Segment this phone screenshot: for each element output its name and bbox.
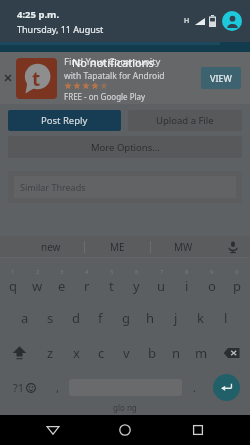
- button[interactable]: Close ad: [0, 52, 16, 104]
- button[interactable]: 2: [25, 262, 49, 300]
- staticText: p: [233, 277, 241, 295]
- button[interactable]: Recents: [178, 415, 218, 445]
- staticText: e: [58, 277, 66, 295]
- staticText: t: [109, 277, 114, 295]
- button[interactable]: k: [188, 300, 213, 335]
- button[interactable]: new: [18, 236, 84, 258]
- button[interactable]: h: [138, 300, 163, 335]
- button[interactable]: Back: [33, 415, 73, 445]
- button[interactable]: c: [89, 335, 114, 370]
- button[interactable]: b: [139, 335, 164, 370]
- staticText: j: [174, 309, 178, 327]
- staticText: f: [98, 309, 103, 327]
- staticText: k: [197, 309, 204, 327]
- staticText: ,: [56, 380, 59, 395]
- button[interactable]: Backspace: [214, 335, 249, 370]
- staticText: h: [146, 309, 155, 327]
- staticText: 1: [11, 268, 15, 276]
- staticText: g: [122, 309, 130, 327]
- staticText: Upload a File: [156, 114, 214, 127]
- staticText: VIEW: [210, 72, 232, 84]
- button[interactable]: Close ad: [0, 52, 250, 104]
- button[interactable]: Upload a File: [128, 110, 242, 131]
- button[interactable]: More Options...: [8, 136, 242, 158]
- button[interactable]: 6: [124, 262, 149, 300]
- staticText: with Tapatalk for Android: [64, 70, 165, 82]
- staticText: i: [185, 277, 189, 295]
- staticText: d: [72, 309, 80, 327]
- button[interactable]: j: [163, 300, 188, 335]
- staticText: glo ng: [113, 402, 137, 413]
- button[interactable]: z: [37, 335, 63, 370]
- staticText: 7: [160, 268, 164, 276]
- staticText: 8: [185, 268, 189, 276]
- staticText: H: [184, 16, 190, 26]
- button[interactable]: ?1: [4, 370, 45, 404]
- staticText: v: [123, 344, 130, 362]
- staticText: .: [193, 380, 196, 395]
- staticText: 4:25 p.m.: [17, 8, 60, 21]
- staticText: a: [21, 309, 29, 327]
- button[interactable]: 5: [99, 262, 124, 300]
- staticText: z: [47, 344, 54, 362]
- staticText: y: [133, 277, 140, 295]
- button[interactable]: v: [114, 335, 139, 370]
- button[interactable]: l: [213, 300, 238, 335]
- button[interactable]: a: [12, 300, 38, 335]
- staticText: o: [208, 277, 216, 295]
- button[interactable]: Post Reply: [8, 110, 121, 131]
- staticText: x: [73, 344, 80, 362]
- button[interactable]: s: [38, 300, 63, 335]
- button[interactable]: n: [164, 335, 189, 370]
- staticText: Post Reply: [41, 114, 88, 127]
- button[interactable]: 8: [174, 262, 199, 300]
- staticText: 2: [36, 268, 40, 276]
- staticText: r: [84, 277, 90, 295]
- staticText: c: [98, 344, 105, 362]
- button[interactable]: f: [88, 300, 113, 335]
- staticText: m: [195, 344, 208, 362]
- button[interactable]: Enter: [213, 374, 240, 401]
- button[interactable]: 7: [149, 262, 174, 300]
- staticText: 4: [85, 268, 89, 276]
- button[interactable]: Home: [105, 415, 145, 445]
- staticText: 3: [60, 268, 64, 276]
- button[interactable]: Shift: [1, 335, 37, 370]
- staticText: No notifications: [72, 55, 154, 70]
- staticText: 9: [210, 268, 214, 276]
- button[interactable]: 0: [224, 262, 249, 300]
- staticText: w: [32, 277, 43, 295]
- button[interactable]: Similar Threads: [8, 171, 242, 203]
- staticText: s: [47, 309, 54, 327]
- staticText: t: [32, 66, 41, 92]
- button[interactable]: 3: [49, 262, 74, 300]
- staticText: Similar Threads: [20, 181, 86, 193]
- button[interactable]: MW: [151, 236, 216, 258]
- staticText: 0: [235, 268, 239, 276]
- button[interactable]: x: [63, 335, 89, 370]
- staticText: MW: [174, 240, 193, 254]
- button[interactable]: 1: [1, 262, 25, 300]
- button[interactable]: d: [63, 300, 88, 335]
- staticText: u: [157, 277, 166, 295]
- staticText: FREE - on Google Play: [64, 91, 146, 102]
- button[interactable]: Account: [222, 11, 242, 31]
- staticText: Thursday, 11 August: [17, 23, 104, 35]
- staticText: ME: [110, 240, 125, 254]
- button[interactable]: 9: [199, 262, 224, 300]
- staticText: b: [148, 344, 156, 362]
- button[interactable]: Voice input: [216, 236, 250, 258]
- button[interactable]: ME: [85, 236, 150, 258]
- staticText: More Options...: [91, 141, 160, 154]
- button[interactable]: g: [113, 300, 138, 335]
- staticText: q: [9, 277, 17, 295]
- staticText: l: [224, 309, 228, 327]
- button[interactable]: VIEW: [201, 67, 241, 89]
- staticText: n: [172, 344, 181, 362]
- button[interactable]: 4: [74, 262, 99, 300]
- button[interactable]: m: [189, 335, 214, 370]
- staticText: ?1: [13, 380, 25, 395]
